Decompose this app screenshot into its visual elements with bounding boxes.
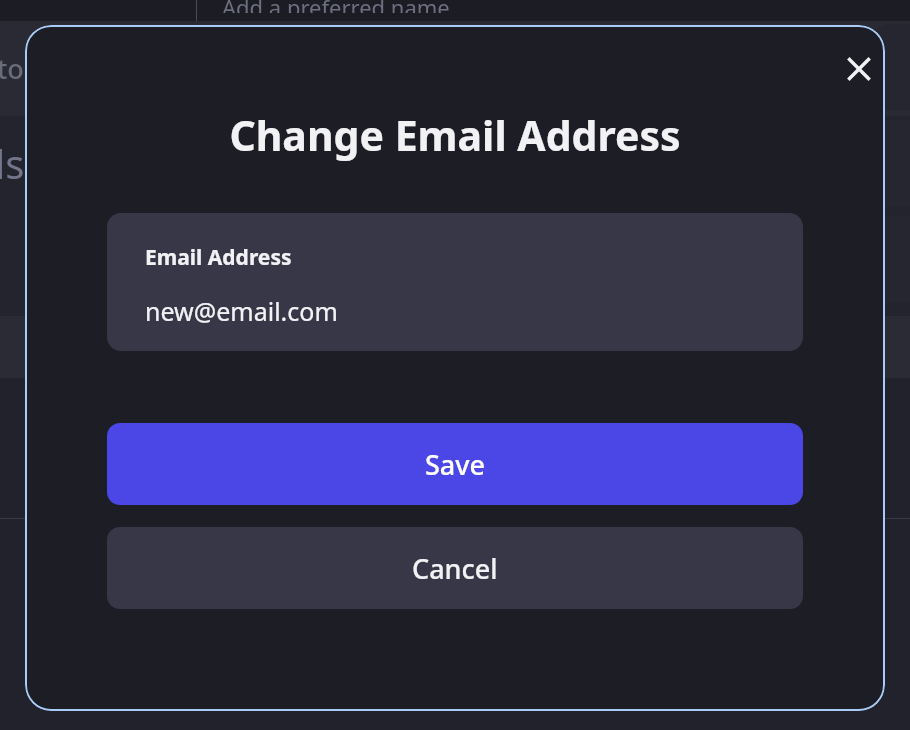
staticText: ls <box>0 136 25 190</box>
staticText: to <box>0 50 24 87</box>
button[interactable]: Cancel <box>107 527 803 609</box>
staticText: Email Address <box>145 243 292 272</box>
staticText: Save <box>425 446 486 483</box>
button[interactable]: Close <box>835 45 883 93</box>
staticText: Change Email Address <box>25 107 885 163</box>
button[interactable]: Save <box>107 423 803 505</box>
staticText: new@email.com <box>145 294 338 328</box>
staticText: Cancel <box>412 550 498 587</box>
button[interactable]: Email Address <box>107 213 803 351</box>
staticText: Add a preferred name... <box>222 0 468 13</box>
